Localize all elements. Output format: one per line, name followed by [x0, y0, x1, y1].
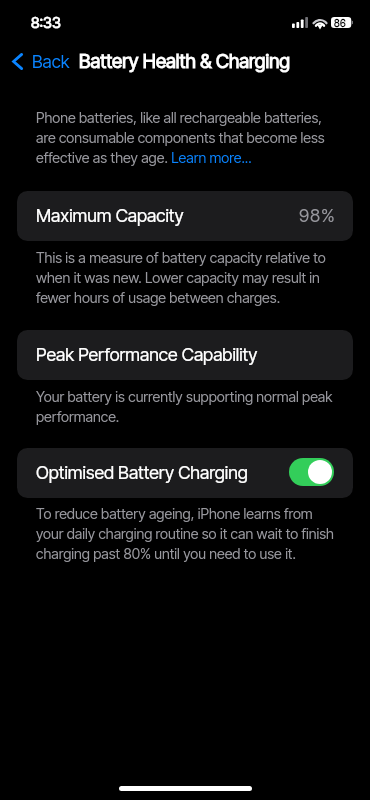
- staticText: 98%: [299, 205, 336, 227]
- button[interactable]: Optimised Battery Charging: [289, 458, 334, 486]
- staticText: Back: [32, 51, 70, 72]
- staticText: 8:33: [31, 13, 61, 31]
- button[interactable]: Maximum Capacity: [17, 191, 353, 241]
- other: Cellular signal: [292, 17, 308, 28]
- other: Wi-Fi: [314, 18, 326, 28]
- staticText: To reduce battery ageing, iPhone learns …: [36, 505, 336, 562]
- staticText: Optimised Battery Charging: [36, 462, 248, 484]
- staticText: Your battery is currently supporting nor…: [36, 388, 336, 425]
- other: Battery 86 percent: [331, 17, 353, 28]
- button[interactable]: Back: [6, 47, 74, 76]
- staticText: Maximum Capacity: [36, 205, 184, 227]
- button[interactable]: Learn more: [171, 150, 253, 169]
- staticText: Peak Performance Capability: [36, 344, 258, 366]
- staticText: This is a measure of battery capacity re…: [36, 249, 336, 306]
- staticText: Phone batteries, like all rechargeable b…: [36, 109, 336, 166]
- button[interactable]: Peak Performance Capability: [17, 330, 353, 380]
- staticText: 86: [334, 17, 346, 28]
- staticText: Battery Health & Charging: [79, 50, 290, 73]
